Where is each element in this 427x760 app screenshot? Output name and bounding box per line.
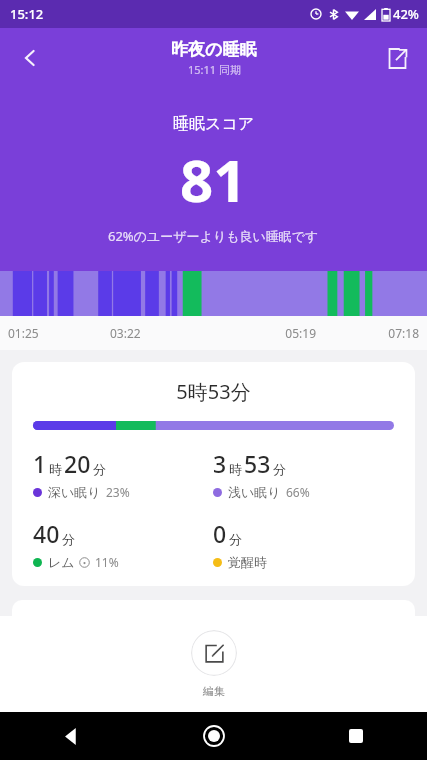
staticText: 昨夜の睡眠 [171,39,257,60]
staticText: 07:18 [316,325,419,341]
staticText: 62%のユーザーよりも良い睡眠です [108,227,319,245]
staticText: 時 [229,461,242,477]
staticText: 分 [229,531,242,547]
staticText: 11% [95,554,119,570]
staticText: 分 [62,531,75,547]
staticText: 分 [273,461,286,477]
button[interactable]: Back [0,712,143,760]
staticText: 20 [64,448,91,479]
button[interactable]: 5時53分 [12,362,415,586]
staticText: 睡眠スコア [173,114,255,134]
button[interactable]: Recent apps [285,712,427,760]
staticText: 時 [49,461,62,477]
button[interactable]: Home [143,712,285,760]
staticText: 66% [286,484,310,500]
staticText: 編集 [203,684,225,698]
staticText: 01:25 [8,325,110,341]
staticText: 15:11 同期 [188,62,241,77]
staticText: 0 [213,518,227,549]
button[interactable]: Back [6,34,54,82]
staticText: 深い眠り [48,484,101,500]
button[interactable]: 編集 [191,630,237,698]
staticText: 1 [33,448,47,479]
staticText: 15:12 [10,5,44,23]
staticText: レム [48,554,75,570]
staticText: 浅い眠り [228,484,281,500]
staticText: 5時53分 [12,378,415,405]
button[interactable]: Share [375,36,419,80]
staticText: 40 [33,518,60,549]
staticText: 分 [93,461,106,477]
staticText: 3 [213,448,227,479]
staticText: 05:19 [213,325,316,341]
staticText: 03:22 [110,325,213,341]
staticText: 42% [393,5,419,23]
staticText: 53 [244,448,271,479]
staticText: 覚醒時 [228,554,267,570]
staticText: 23% [106,484,130,500]
staticText: 81 [180,140,247,219]
